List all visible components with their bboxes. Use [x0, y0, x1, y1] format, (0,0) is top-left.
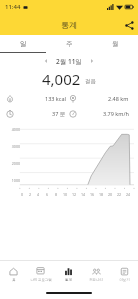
button[interactable]: Previous day [40, 55, 52, 67]
button[interactable]: 나의 프로그램 [27, 261, 54, 287]
staticText: 커뮤니티 [89, 278, 103, 282]
staticText: 22 [117, 192, 122, 197]
staticText: 11:44 [5, 3, 21, 11]
staticText: 2.48 km [108, 95, 129, 102]
staticText: 8 [55, 192, 58, 197]
staticText: 6 [46, 192, 49, 197]
button[interactable]: 일 [0, 35, 46, 52]
staticText: 2월 11일 [56, 57, 82, 66]
staticText: 3.79 km/h [103, 110, 129, 117]
staticText: 일 [20, 40, 27, 48]
staticText: 2 [29, 192, 32, 197]
staticText: 12 [72, 192, 77, 197]
staticText: 10 [63, 192, 68, 197]
button[interactable]: 홈 [0, 261, 27, 287]
staticText: 14 [81, 192, 86, 197]
button[interactable]: 주 [46, 35, 92, 52]
staticText: 37 분 [52, 110, 66, 118]
staticText: 더보기 [119, 278, 130, 282]
staticText: 16 [90, 192, 95, 197]
staticText: 4 [37, 192, 40, 197]
staticText: 2000 [11, 161, 20, 166]
button[interactable]: 더보기 [110, 261, 138, 287]
staticText: 걸음 [85, 78, 96, 85]
button[interactable]: Share [120, 16, 138, 34]
staticText: 1000 [11, 178, 20, 183]
staticText: 주 [66, 40, 73, 48]
button[interactable]: Next day [86, 55, 98, 67]
staticText: 3000 [11, 144, 20, 149]
staticText: 홈 [12, 278, 16, 282]
button[interactable]: 37 분 [6, 106, 69, 121]
staticText: 통계 [65, 278, 72, 282]
staticText: 0 [21, 192, 24, 197]
button[interactable]: 133 kcal [6, 91, 69, 106]
staticText: 20 [108, 192, 113, 197]
staticText: 나의 프로그램 [30, 277, 52, 282]
staticText: 월 [112, 40, 119, 48]
staticText: 133 kcal [45, 95, 66, 102]
staticText: 18 [99, 192, 104, 197]
button[interactable]: 3.79 km/h [69, 106, 132, 121]
button[interactable]: 커뮤니티 [82, 261, 110, 287]
button[interactable]: 월 [92, 35, 138, 52]
staticText: 4,002 [42, 69, 81, 87]
button[interactable]: 2.48 km [69, 91, 132, 106]
button[interactable]: 통계 [54, 261, 82, 287]
staticText: 24 [126, 192, 131, 197]
staticText: 통계 [61, 20, 77, 30]
staticText: 4000 [11, 127, 20, 132]
